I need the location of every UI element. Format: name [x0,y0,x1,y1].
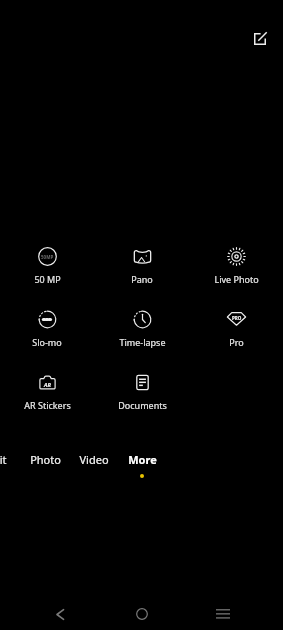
staticText: Portrait [0,452,7,467]
button[interactable]: Portrait [0,450,17,484]
staticText: Pano [131,273,153,285]
staticText: AR Stickers [24,399,71,411]
button[interactable]: PRO [203,310,269,348]
button[interactable]: AR [14,373,80,411]
button[interactable]: Time-lapse [109,310,175,348]
button[interactable]: Slo-mo [14,310,80,348]
button[interactable]: Live Photo [203,247,269,285]
button[interactable]: 50MP [14,247,80,285]
staticText: PRO [232,315,242,321]
staticText: 50MP [41,254,54,260]
staticText: Documents [118,399,167,411]
staticText: 50 MP [34,273,61,285]
staticText: Time-lapse [119,336,166,348]
staticText: Photo [30,452,61,467]
button[interactable]: Video [64,450,124,484]
button[interactable]: Home [125,597,159,630]
button[interactable]: Recent apps [206,597,240,630]
staticText: Live Photo [214,273,259,285]
button[interactable]: Photo [15,450,75,484]
staticText: Slo-mo [32,336,62,348]
button[interactable]: Pano [109,247,175,285]
staticText: More [128,452,157,467]
button[interactable]: Documents [109,373,175,411]
staticText: Pro [229,336,244,348]
staticText: AR [44,381,51,388]
button[interactable]: Back [43,597,77,630]
staticText: Video [79,452,109,467]
button[interactable]: More [112,450,172,484]
button[interactable]: Edit camera modes [248,27,271,50]
